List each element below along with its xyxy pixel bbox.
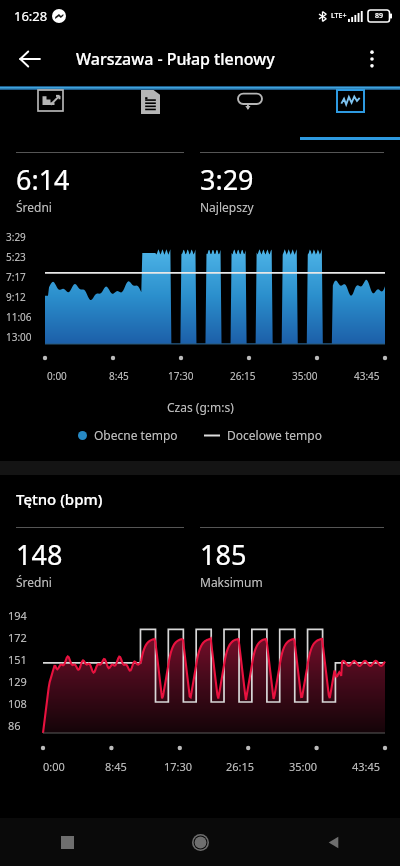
staticText: 35:00 [292, 369, 318, 383]
staticText: 3:29 [200, 161, 254, 198]
staticText: 5:23 [6, 250, 26, 264]
staticText: 108 [8, 696, 27, 711]
button[interactable]: Map [0, 90, 100, 111]
staticText: 13:00 [6, 330, 32, 344]
staticText: 3:29 [6, 230, 26, 244]
button[interactable]: Home [134, 818, 267, 866]
staticText: LTE+ [331, 11, 347, 21]
staticText: 129 [8, 674, 27, 689]
button[interactable]: Back [267, 818, 400, 866]
staticText: 26:15 [230, 369, 256, 383]
staticText: 17:30 [168, 369, 194, 383]
staticText: 35:00 [289, 759, 318, 774]
staticText: 26:15 [226, 759, 255, 774]
staticText: 11:06 [6, 310, 32, 324]
button[interactable]: Details [100, 90, 200, 114]
staticText: Średni [16, 574, 52, 590]
staticText: 8:45 [109, 369, 129, 383]
staticText: 17:30 [164, 759, 193, 774]
staticText: 43:45 [354, 369, 380, 383]
staticText: 0:00 [43, 759, 65, 774]
staticText: 89 [375, 11, 384, 21]
staticText: Średni [16, 199, 52, 215]
staticText: 185 [200, 536, 247, 573]
staticText: Docelowe tempo [227, 427, 322, 443]
button[interactable]: Recents [0, 818, 134, 866]
staticText: 9:12 [6, 290, 26, 304]
staticText: 43:45 [352, 759, 381, 774]
staticText: 86 [8, 718, 21, 733]
staticText: Tętno (bpm) [16, 489, 103, 509]
staticText: 8:45 [105, 759, 127, 774]
staticText: 0:00 [47, 369, 67, 383]
button[interactable]: Laps [200, 90, 300, 110]
staticText: Czas (g:m:s) [167, 399, 234, 415]
staticText: Maksimum [200, 574, 263, 590]
staticText: 6:14 [16, 161, 70, 198]
staticText: 194 [8, 608, 27, 623]
staticText: 148 [16, 536, 63, 573]
staticText: 172 [8, 630, 27, 645]
button[interactable]: Charts [300, 90, 400, 112]
button[interactable]: Back [8, 37, 52, 81]
staticText: 7:17 [6, 270, 26, 284]
staticText: 16:28 [14, 7, 48, 25]
button[interactable]: More options [350, 37, 394, 81]
staticText: Warszawa - Pułap tlenowy [76, 48, 275, 70]
staticText: Najlepszy [200, 199, 254, 215]
staticText: 151 [8, 652, 27, 667]
staticText: Obecne tempo [94, 427, 178, 443]
